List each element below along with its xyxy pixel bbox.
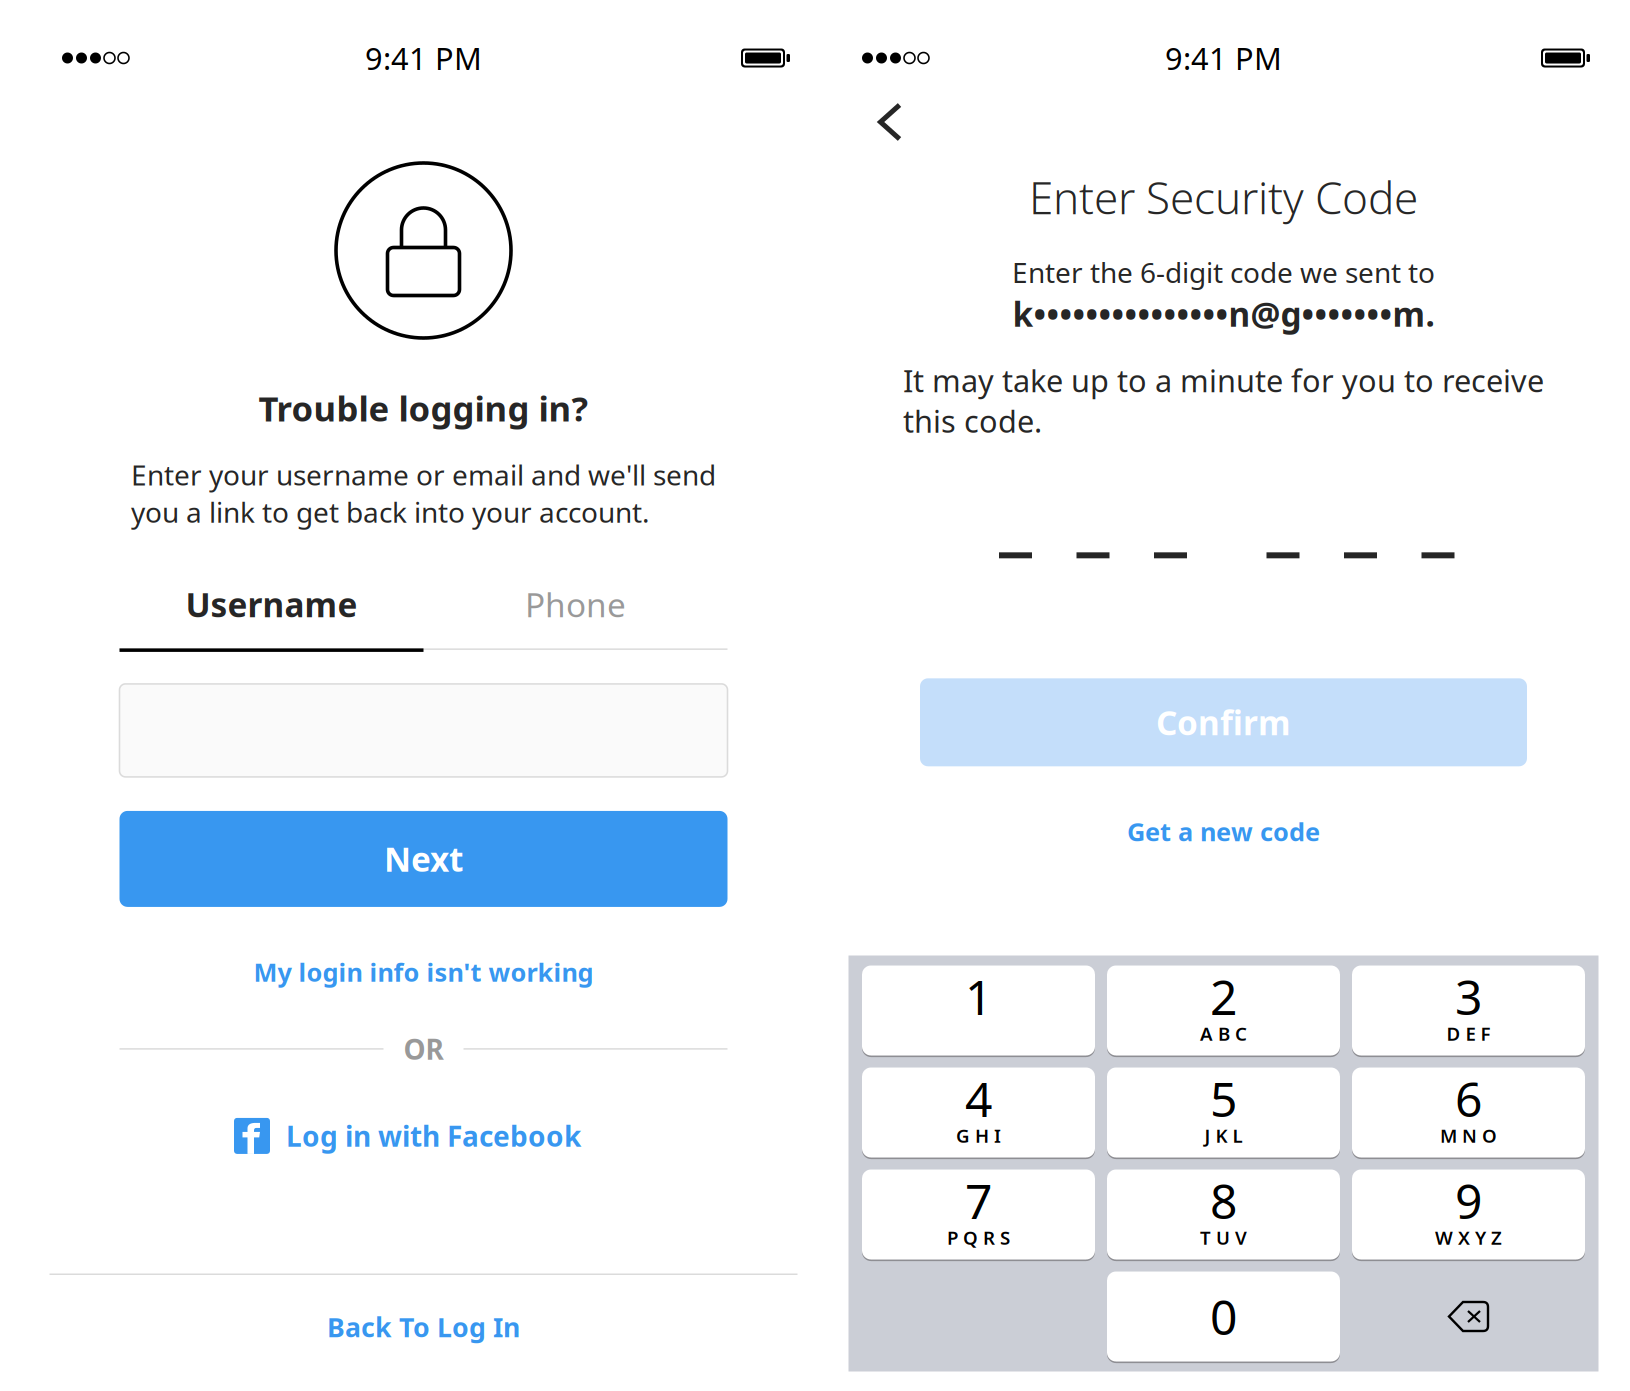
button[interactable]: Log in with Facebook <box>119 1110 727 1162</box>
button[interactable]: 2 <box>1107 965 1340 1055</box>
button[interactable]: 9 <box>1352 1169 1585 1259</box>
button[interactable]: Confirm <box>920 678 1527 766</box>
staticText: Log in with Facebook <box>286 1117 581 1154</box>
staticText: Next <box>384 837 463 881</box>
staticText: G H I <box>956 1123 1001 1148</box>
staticText: k•••••••••••••••n@g•••••••m. <box>1012 292 1434 336</box>
staticText: My login info isn't working <box>253 955 593 989</box>
button[interactable]: Back To Log In <box>0 1275 847 1391</box>
staticText: It may take up to a minute for you to re… <box>903 360 1544 441</box>
staticText: 1 <box>965 965 992 1028</box>
button[interactable]: Username <box>119 560 423 648</box>
staticText: Enter the 6-digit code we sent to <box>1012 253 1435 291</box>
staticText: 3 <box>1455 965 1482 1028</box>
button[interactable]: Phone <box>423 560 727 648</box>
staticText: 6 <box>1455 1067 1482 1130</box>
staticText: Trouble logging in? <box>258 385 588 431</box>
staticText: Phone <box>525 582 626 627</box>
staticText: OR <box>403 1030 443 1067</box>
staticText: 9 <box>1455 1169 1482 1232</box>
button[interactable]: 8 <box>1107 1169 1340 1259</box>
staticText: 5 <box>1210 1067 1237 1130</box>
staticText: 4 <box>965 1067 992 1130</box>
staticText: D E F <box>1446 1021 1490 1046</box>
staticText: Enter Security Code <box>1029 168 1418 226</box>
staticText: 7 <box>965 1169 992 1232</box>
staticText: P Q R S <box>947 1225 1010 1250</box>
staticText: Enter your username or email and we'll s… <box>131 456 716 530</box>
staticText: 8 <box>1210 1169 1237 1232</box>
staticText: 2 <box>1210 965 1237 1028</box>
staticText: 9:41 PM <box>1165 38 1282 78</box>
button[interactable]: Delete <box>1352 1271 1585 1361</box>
staticText: M N O <box>1440 1123 1497 1148</box>
button[interactable]: 4 <box>862 1067 1095 1157</box>
staticText: T U V <box>1200 1225 1247 1250</box>
staticText: A B C <box>1200 1021 1247 1046</box>
button[interactable]: Next <box>119 811 727 907</box>
button[interactable]: Back <box>855 118 925 184</box>
button[interactable]: 3 <box>1352 965 1585 1055</box>
staticText: Confirm <box>1156 700 1291 744</box>
staticText: 9:41 PM <box>365 38 482 78</box>
staticText: 0 <box>1210 1285 1237 1348</box>
staticText: W X Y Z <box>1435 1225 1502 1250</box>
button[interactable]: 0 <box>1107 1271 1340 1361</box>
button[interactable]: 1 <box>862 965 1095 1055</box>
button[interactable]: 7 <box>862 1169 1095 1259</box>
button[interactable]: 5 <box>1107 1067 1340 1157</box>
staticText: Back To Log In <box>327 1309 520 1345</box>
staticText: Username <box>185 582 357 627</box>
button[interactable]: My login info isn't working <box>119 939 727 1005</box>
button[interactable]: Get a new code <box>1127 805 1320 857</box>
staticText: J K L <box>1204 1123 1242 1148</box>
staticText: Get a new code <box>1127 814 1320 848</box>
button[interactable]: 6 <box>1352 1067 1585 1157</box>
